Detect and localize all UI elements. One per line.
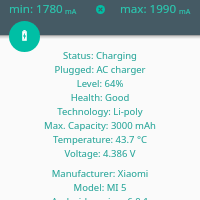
staticText: Health: Good — [0, 91, 200, 104]
staticText: mA — [65, 6, 77, 16]
staticText: Android version: 6.0.1 — [0, 195, 200, 200]
button[interactable]: Temperature: 43.7 °C — [0, 132, 200, 146]
staticText: Plugged: AC charger — [0, 63, 200, 76]
staticText: min: 1780 — [9, 1, 63, 17]
staticText: Status: Charging — [0, 49, 200, 62]
staticText: Model: MI 5 — [0, 181, 200, 194]
button[interactable]: Plugged: AC charger — [0, 62, 200, 76]
button[interactable]: Max. Capacity: 3000 mAh — [0, 118, 200, 132]
button[interactable]: Voltage: 4.386 V — [0, 146, 200, 160]
button[interactable]: Manufacturer: Xiaomi — [0, 166, 200, 180]
button[interactable]: Reset — [91, 0, 109, 18]
staticText: Level: 64% — [0, 77, 200, 90]
staticText: Temperature: 43.7 °C — [0, 133, 200, 146]
button[interactable]: Health: Good — [0, 90, 200, 104]
button[interactable]: Battery charging — [9, 21, 40, 52]
button[interactable]: Android version: 6.0.1 — [0, 194, 200, 200]
button[interactable]: Technology: Li-poly — [0, 104, 200, 118]
staticText: mA — [179, 6, 191, 16]
button[interactable]: Status: Charging — [0, 48, 200, 62]
staticText: Manufacturer: Xiaomi — [0, 167, 200, 180]
button[interactable]: Model: MI 5 — [0, 180, 200, 194]
staticText: max: 1990 — [120, 1, 177, 17]
staticText: Technology: Li-poly — [0, 105, 200, 118]
staticText: Max. Capacity: 3000 mAh — [0, 119, 200, 132]
button[interactable]: Level: 64% — [0, 76, 200, 90]
staticText: Voltage: 4.386 V — [0, 147, 200, 160]
